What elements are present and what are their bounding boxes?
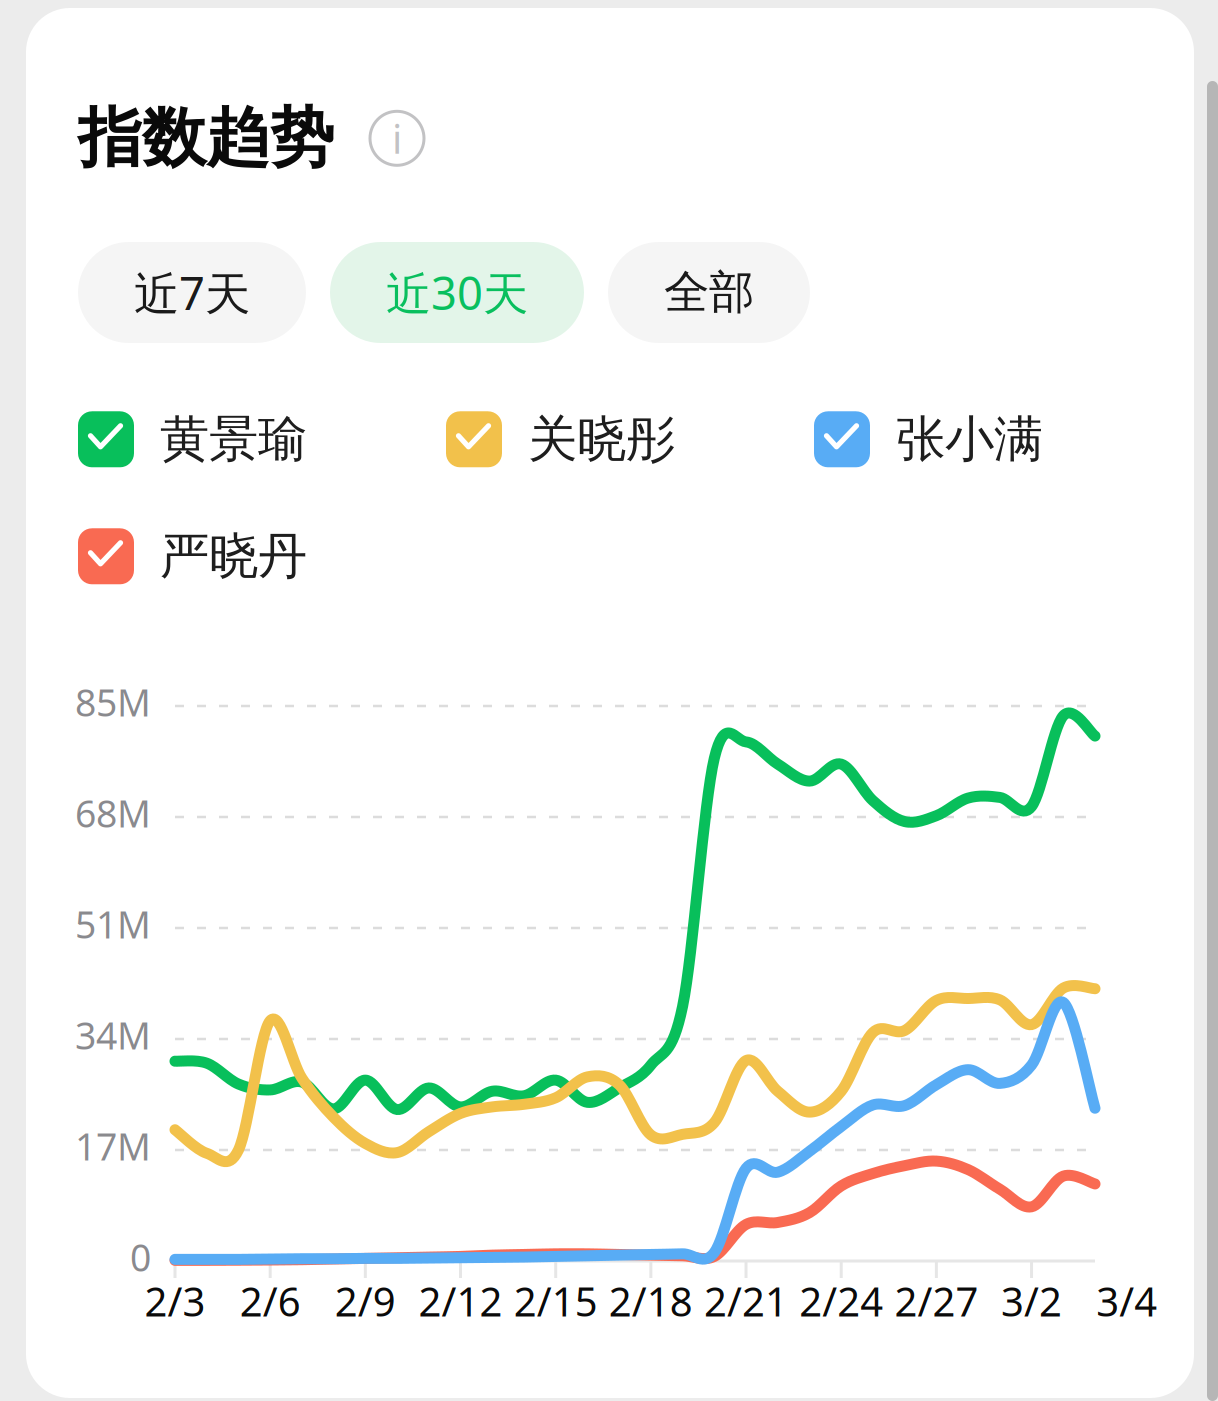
staticText: 张小满 bbox=[896, 409, 1043, 470]
button[interactable]: 全部 bbox=[608, 242, 810, 343]
staticText: 2/27 bbox=[894, 1274, 978, 1327]
button[interactable]: 黄景瑜 bbox=[78, 409, 408, 470]
staticText: 指数趋势 bbox=[78, 99, 334, 178]
staticText: i bbox=[392, 112, 402, 165]
button[interactable]: 近30天 bbox=[330, 242, 584, 343]
button[interactable]: 张小满 bbox=[814, 409, 1144, 470]
staticText: 3/4 bbox=[1096, 1274, 1157, 1327]
staticText: 2/15 bbox=[514, 1274, 598, 1327]
staticText: 0 bbox=[130, 1232, 151, 1282]
staticText: 2/3 bbox=[144, 1274, 205, 1327]
staticText: 68M bbox=[75, 788, 151, 838]
staticText: 2/21 bbox=[704, 1274, 788, 1327]
staticText: 17M bbox=[75, 1121, 151, 1171]
staticText: 近30天 bbox=[386, 262, 528, 323]
staticText: 黄景瑜 bbox=[160, 409, 307, 470]
staticText: 全部 bbox=[664, 265, 754, 320]
staticText: 2/6 bbox=[240, 1274, 301, 1327]
button[interactable]: 近7天 bbox=[78, 242, 306, 343]
staticText: 3/2 bbox=[1001, 1274, 1062, 1327]
staticText: 2/12 bbox=[418, 1274, 502, 1327]
staticText: 85M bbox=[75, 677, 151, 727]
staticText: 2/9 bbox=[335, 1274, 396, 1327]
staticText: 关晓彤 bbox=[528, 409, 675, 470]
button[interactable]: 严晓丹 bbox=[78, 526, 408, 587]
staticText: 51M bbox=[75, 899, 151, 949]
staticText: 严晓丹 bbox=[160, 526, 307, 587]
staticText: 2/18 bbox=[609, 1274, 693, 1327]
button[interactable]: Info bbox=[370, 111, 424, 165]
staticText: 2/24 bbox=[799, 1274, 883, 1327]
staticText: 34M bbox=[75, 1010, 151, 1060]
staticText: 近7天 bbox=[134, 262, 250, 323]
button[interactable]: 关晓彤 bbox=[446, 409, 776, 470]
